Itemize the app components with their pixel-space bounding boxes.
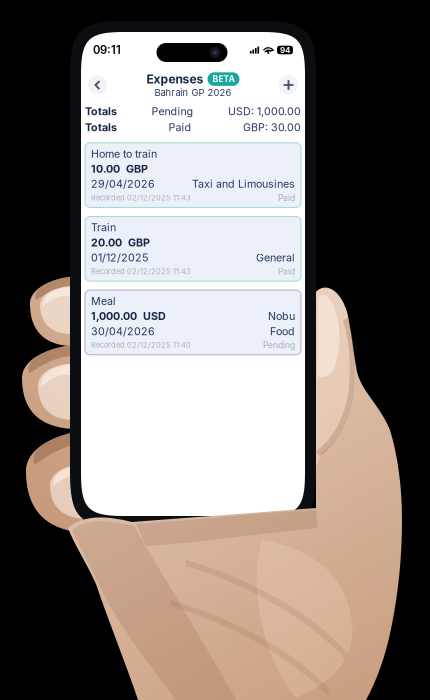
staticText: Recorded 02/12/2025 11:43 <box>91 193 191 202</box>
staticText: Train <box>91 221 116 234</box>
staticText: BETA <box>212 74 234 84</box>
staticText: 09:11 <box>93 43 121 57</box>
button[interactable]: Train <box>85 216 301 281</box>
staticText: USD <box>143 310 166 323</box>
staticText: 1,000.00 <box>91 310 137 323</box>
staticText: Meal <box>91 295 116 307</box>
staticText: Paid <box>278 266 295 277</box>
staticText: General <box>256 251 295 264</box>
staticText: Totals <box>85 121 117 134</box>
staticText: Paid <box>278 193 295 203</box>
staticText: 10.00 <box>91 162 120 175</box>
staticText: Pending <box>263 340 295 350</box>
staticText: Pending <box>151 105 193 118</box>
staticText: 30/04/2026 <box>91 325 155 338</box>
staticText: 01/12/2025 <box>91 251 148 264</box>
staticText: Taxi and Limousines <box>192 177 295 190</box>
staticText: 94 <box>280 45 290 55</box>
button[interactable]: Meal <box>85 290 301 355</box>
staticText: Home to train <box>91 147 157 160</box>
staticText: Bahrain GP 2026 <box>154 87 231 98</box>
staticText: Recorded 02/12/2025 11:40 <box>91 341 191 350</box>
staticText: Paid <box>168 121 191 134</box>
staticText: GBP: 30.00 <box>243 121 301 134</box>
staticText: Nobu <box>268 310 295 323</box>
button[interactable]: Add expense <box>279 75 298 94</box>
staticText: 20.00 <box>91 236 122 249</box>
staticText: Expenses <box>146 72 203 86</box>
staticText: Recorded 02/12/2025 11:43 <box>91 267 191 276</box>
staticText: GBP <box>128 236 150 249</box>
button[interactable]: Back <box>88 75 107 94</box>
staticText: GBP <box>126 162 148 175</box>
staticText: USD: 1,000.00 <box>228 105 301 118</box>
staticText: 29/04/2026 <box>91 177 155 190</box>
button[interactable]: Home to train <box>85 143 301 207</box>
staticText: Food <box>270 325 295 338</box>
staticText: Totals <box>85 105 117 118</box>
